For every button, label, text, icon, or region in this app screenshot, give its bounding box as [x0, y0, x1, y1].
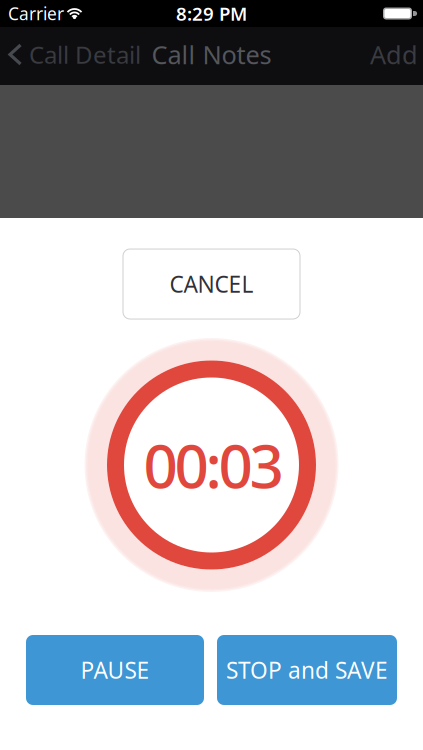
- staticText: CANCEL: [169, 269, 253, 299]
- button[interactable]: Call Detail: [0, 39, 141, 70]
- button[interactable]: CANCEL: [123, 249, 300, 319]
- staticText: Carrier: [8, 2, 64, 25]
- staticText: PAUSE: [80, 655, 149, 685]
- button[interactable]: Add: [370, 38, 423, 71]
- button[interactable]: STOP and SAVE: [217, 635, 397, 705]
- staticText: STOP and SAVE: [226, 655, 388, 685]
- staticText: Call Notes: [151, 38, 271, 71]
- staticText: Add: [370, 38, 418, 71]
- staticText: Call Detail: [29, 39, 141, 70]
- staticText: 8:29 PM: [176, 1, 247, 26]
- staticText: 00:03: [143, 425, 283, 505]
- button[interactable]: PAUSE: [26, 635, 204, 705]
